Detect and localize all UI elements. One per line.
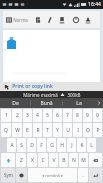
staticText: U — [66, 127, 70, 134]
button[interactable]: J — [67, 138, 76, 152]
staticText: A — [10, 142, 14, 149]
button[interactable]: 2 — [12, 109, 22, 122]
button[interactable]: 8 — [73, 109, 82, 122]
staticText: Print or copy link — [12, 83, 53, 90]
button[interactable]: S — [17, 138, 26, 152]
button[interactable]: U — [63, 123, 72, 137]
staticText: Bună — [40, 100, 53, 107]
button[interactable]: 5 — [43, 109, 52, 122]
staticText: T — [46, 127, 49, 134]
button[interactable]: Q — [1, 123, 11, 137]
button[interactable] — [3, 30, 100, 82]
button[interactable]: Bold — [32, 14, 43, 25]
button[interactable]: 0 — [93, 109, 102, 122]
staticText: . — [82, 172, 84, 179]
button[interactable]: Norma — [6, 14, 28, 26]
button[interactable]: Enter — [89, 168, 102, 182]
staticText: B — [62, 157, 66, 164]
staticText: Y — [56, 127, 59, 134]
button[interactable]: D — [27, 138, 36, 152]
button[interactable]: V — [49, 153, 58, 167]
staticText: F — [40, 142, 43, 149]
button[interactable]: 7 — [63, 109, 72, 122]
button[interactable]: 6 — [53, 109, 62, 122]
staticText: W — [15, 127, 20, 134]
button[interactable]: F — [37, 138, 46, 152]
staticText: P — [96, 127, 100, 134]
staticText: D — [30, 142, 34, 149]
staticText: 7 — [66, 112, 69, 119]
button[interactable]: E — [23, 123, 32, 137]
staticText: 3 — [26, 112, 29, 119]
staticText: La — [76, 100, 82, 107]
staticText: 6 — [56, 112, 59, 119]
button[interactable]: Shift — [1, 153, 15, 167]
staticText: C — [41, 157, 45, 164]
staticText: I — [77, 127, 79, 134]
button[interactable]: Emoji — [16, 168, 27, 182]
staticText: M — [81, 157, 86, 164]
button[interactable]: La — [63, 98, 94, 108]
button[interactable]: P — [93, 123, 102, 137]
button[interactable]: O — [83, 123, 92, 137]
button[interactable]: Bună — [31, 98, 62, 108]
button[interactable]: 3 — [23, 109, 32, 122]
staticText: H — [60, 142, 64, 149]
button[interactable]: K — [77, 138, 86, 152]
staticText: V — [52, 157, 56, 164]
staticText: 4 — [36, 112, 39, 119]
button[interactable]: De — [0, 98, 30, 108]
button[interactable]: G — [47, 138, 56, 152]
staticText: ◂ română ▸ — [42, 173, 63, 178]
button[interactable]: W — [12, 123, 22, 137]
staticText: G — [50, 142, 54, 149]
staticText: Mărime maximă — [23, 92, 58, 98]
staticText: Z — [20, 157, 23, 164]
staticText: X — [31, 157, 34, 164]
staticText: S — [20, 142, 23, 149]
button[interactable]: 9 — [83, 109, 92, 122]
button[interactable]: . — [78, 168, 88, 182]
button[interactable]: A — [7, 138, 16, 152]
button[interactable]: Highlight — [70, 14, 81, 25]
staticText: 300kB — [67, 92, 81, 98]
button[interactable]: X — [27, 153, 37, 167]
button[interactable]: Italic — [44, 14, 55, 25]
button[interactable]: B — [59, 153, 68, 167]
staticText: 8 — [76, 112, 79, 119]
button[interactable]: R — [33, 123, 42, 137]
button[interactable]: Y — [53, 123, 62, 137]
button[interactable]: Backspace — [89, 153, 102, 167]
staticText: E — [26, 127, 29, 134]
button[interactable]: H — [57, 138, 66, 152]
button[interactable]: L — [87, 138, 96, 152]
button[interactable]: I — [73, 123, 82, 137]
button[interactable]: Sym — [1, 168, 15, 182]
staticText: R — [36, 127, 40, 134]
button[interactable]: N — [69, 153, 78, 167]
button[interactable]: Z — [16, 153, 26, 167]
button[interactable]: T — [43, 123, 52, 137]
staticText: De — [12, 100, 19, 107]
button[interactable]: 4 — [33, 109, 42, 122]
staticText: 9 — [86, 112, 89, 119]
button[interactable]: C — [38, 153, 48, 167]
button[interactable]: Text color — [82, 14, 93, 25]
button[interactable]: 1 — [1, 109, 11, 122]
button[interactable]: M — [79, 153, 88, 167]
button[interactable]: More suggestions — [94, 98, 103, 108]
staticText: 1 — [5, 112, 8, 119]
staticText: L — [90, 142, 93, 149]
button[interactable]: Underline — [56, 14, 67, 25]
button[interactable]: Print or copy link — [0, 82, 103, 91]
staticText: J — [71, 142, 73, 149]
staticText: Norma — [13, 17, 28, 23]
staticText: N — [72, 157, 76, 164]
button[interactable]: ◂ română ▸ — [28, 168, 77, 182]
staticText: Q — [4, 127, 8, 134]
staticText: 2 — [16, 112, 19, 119]
staticText: Sym — [4, 172, 13, 178]
staticText: O — [86, 127, 90, 134]
staticText: K — [80, 142, 84, 149]
staticText: 0 — [96, 112, 99, 119]
